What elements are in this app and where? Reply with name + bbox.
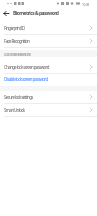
staticText: Smart Unlock: [4, 107, 25, 113]
staticText: 10:38: [82, 2, 89, 6]
staticText: LOCK SCREEN PASSWORD: [4, 53, 31, 57]
button[interactable]: Face Recognition: [0, 34, 97, 47]
staticText: Fingerprint ID: [4, 25, 25, 31]
staticText: Face Recognition: [4, 38, 30, 44]
button[interactable]: Disable lock screen password: [0, 72, 97, 85]
staticText: Biometrics & password: [13, 10, 59, 17]
button[interactable]: Secure lock settings: [0, 90, 97, 103]
button[interactable]: Fingerprint ID: [0, 21, 97, 34]
button[interactable]: Smart Unlock: [0, 103, 97, 116]
staticText: Secure lock settings: [4, 94, 33, 100]
staticText: Change lock screen password: [4, 64, 49, 70]
button[interactable]: Change lock screen password: [0, 60, 97, 73]
button[interactable]: [4, 11, 9, 16]
staticText: Disable lock screen password: [4, 76, 48, 82]
